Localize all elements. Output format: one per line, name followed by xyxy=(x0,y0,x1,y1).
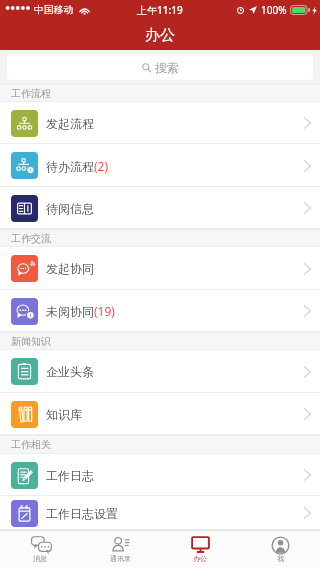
staticText: 企业头条 xyxy=(46,364,94,379)
staticText: 工作日志 xyxy=(46,468,94,483)
staticText: 搜索 xyxy=(155,60,179,75)
button[interactable]: 发起协同 xyxy=(0,247,320,290)
staticText: 工作相关 xyxy=(11,438,51,451)
button[interactable]: 我 xyxy=(240,531,320,568)
button[interactable]: 待阅信息 xyxy=(0,187,320,229)
staticText: 中国移动 xyxy=(34,4,74,16)
staticText: 100% xyxy=(261,3,287,17)
button[interactable]: 消息 xyxy=(0,531,80,568)
button[interactable]: 待办流程(2) xyxy=(0,144,320,187)
button[interactable]: 通讯录 xyxy=(80,531,160,568)
button[interactable]: 企业头条 xyxy=(0,350,320,393)
staticText: 办公 xyxy=(193,554,207,563)
staticText: 发起协同 xyxy=(46,261,94,276)
staticText: 发起流程 xyxy=(46,116,94,131)
staticText: 工作交流 xyxy=(11,232,51,245)
button[interactable]: 发起流程 xyxy=(0,102,320,144)
staticText: 待办流程(2) xyxy=(46,158,109,174)
button[interactable]: 搜索 xyxy=(7,54,313,80)
button[interactable]: 未阅协同(19) xyxy=(0,290,320,332)
button[interactable]: 工作日志设置 xyxy=(0,496,320,530)
staticText: 消息 xyxy=(33,554,47,563)
staticText: 工作流程 xyxy=(11,87,51,100)
staticText: 通讯录 xyxy=(110,554,131,563)
staticText: 我 xyxy=(277,554,284,563)
staticText: 办公 xyxy=(145,26,175,45)
staticText: 知识库 xyxy=(46,407,82,422)
button[interactable]: 工作日志 xyxy=(0,454,320,496)
staticText: 待阅信息 xyxy=(46,201,94,216)
staticText: 上午11:19 xyxy=(137,3,183,17)
staticText: 未阅协同(19) xyxy=(46,303,115,319)
button[interactable]: 知识库 xyxy=(0,393,320,435)
staticText: 新闻知识 xyxy=(11,335,51,348)
button[interactable]: 办公 xyxy=(160,531,240,568)
staticText: 工作日志设置 xyxy=(46,506,118,521)
